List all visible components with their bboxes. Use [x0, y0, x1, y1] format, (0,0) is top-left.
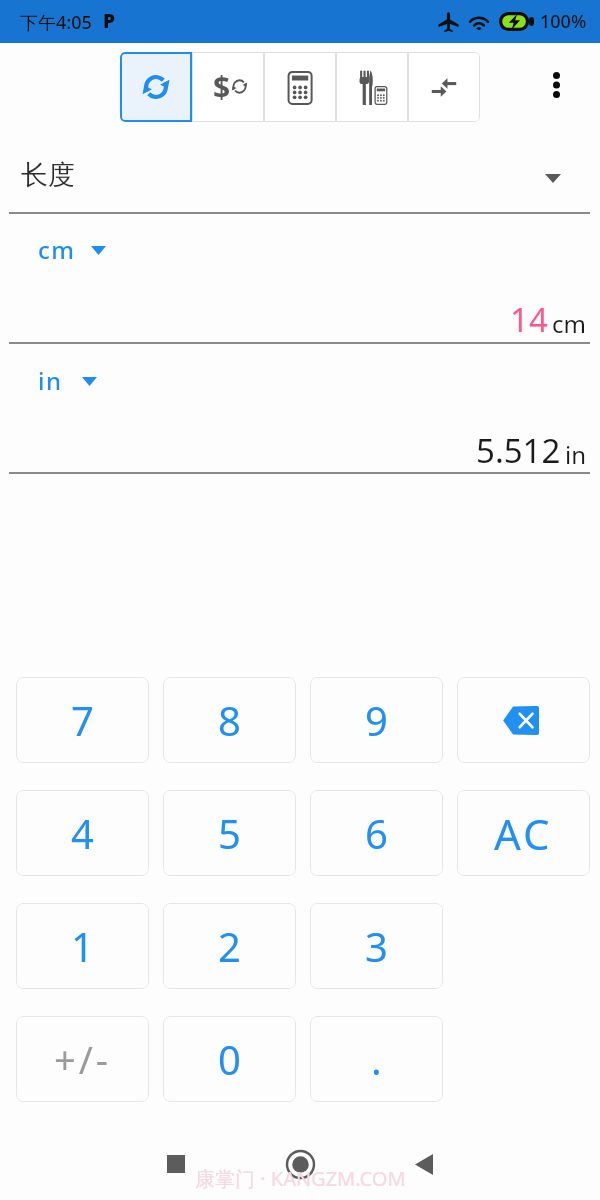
button[interactable]: 7 [16, 677, 149, 763]
staticText: 4 [71, 806, 94, 860]
button[interactable]: in [30, 364, 97, 396]
staticText: in [38, 364, 63, 396]
staticText: 0 [218, 1032, 241, 1086]
button[interactable]: 1 [16, 903, 149, 989]
staticText: cm [552, 307, 586, 340]
staticText: 下午4:05 [20, 10, 92, 35]
button[interactable]: 3 [310, 903, 443, 989]
staticText: in [565, 438, 587, 471]
staticText: 14 [510, 297, 548, 342]
staticText: 7 [71, 693, 94, 747]
staticText: 5.512 [476, 428, 561, 473]
button[interactable]: Recent apps [152, 1140, 200, 1188]
staticText: 9 [365, 693, 388, 747]
button[interactable]: Back [400, 1140, 448, 1188]
staticText: 1 [71, 919, 94, 973]
button[interactable]: 长度 [0, 138, 600, 212]
staticText: . [371, 1032, 382, 1086]
button[interactable]: 8 [163, 677, 296, 763]
button[interactable]: 4 [16, 790, 149, 876]
button[interactable]: AC [457, 790, 590, 876]
staticText: cm [38, 233, 76, 265]
staticText: 5 [218, 806, 241, 860]
staticText: 6 [365, 806, 388, 860]
button[interactable]: cm [30, 233, 106, 265]
button[interactable]: Unit converter [120, 52, 192, 122]
staticText: $ [213, 66, 231, 107]
button[interactable]: +/- [16, 1016, 149, 1102]
button[interactable]: 2 [163, 903, 296, 989]
button[interactable]: 0 [163, 1016, 296, 1102]
staticText: P [103, 8, 116, 34]
button[interactable]: 6 [310, 790, 443, 876]
staticText: 3 [365, 919, 388, 973]
staticText: +/- [54, 1033, 112, 1085]
button[interactable]: Quick convert [408, 52, 480, 122]
button[interactable]: Delete [457, 677, 590, 763]
button[interactable]: Tip calculator [336, 52, 408, 122]
button[interactable]: Currency converter [192, 52, 264, 122]
button[interactable]: 9 [310, 677, 443, 763]
staticText: 康掌门 · KANGZM.COM [195, 1165, 406, 1192]
staticText: 8 [218, 693, 241, 747]
button[interactable]: Home [276, 1140, 324, 1188]
button[interactable]: Calculator [264, 52, 336, 122]
staticText: 100% [540, 9, 587, 34]
button[interactable]: . [310, 1016, 443, 1102]
button[interactable]: More options [532, 52, 580, 122]
staticText: 2 [218, 919, 241, 973]
staticText: AC [494, 805, 553, 862]
staticText: 长度 [21, 158, 75, 192]
button[interactable]: 5 [163, 790, 296, 876]
